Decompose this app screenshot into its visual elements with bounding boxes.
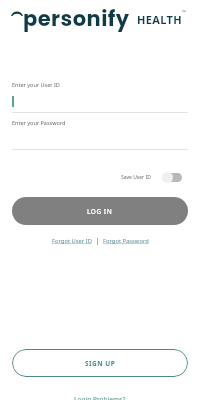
button[interactable]: SIGN UP — [12, 349, 188, 377]
button[interactable]: Forgot Password — [103, 237, 149, 245]
button[interactable]: Save User ID — [121, 171, 182, 183]
button[interactable]: Forgot User ID — [52, 237, 92, 245]
staticText: Enter your Password — [12, 119, 66, 126]
button[interactable]: Login Problems? — [74, 395, 126, 400]
staticText: HEALTH — [137, 12, 182, 27]
staticText: Save User ID — [121, 174, 151, 181]
staticText: Enter your User ID — [12, 81, 60, 88]
staticText: SIGN UP — [85, 359, 116, 368]
staticText: personify — [23, 4, 130, 33]
staticText: ™ — [182, 9, 186, 16]
staticText: LOG IN — [87, 207, 113, 216]
button[interactable]: LOG IN — [12, 197, 188, 225]
